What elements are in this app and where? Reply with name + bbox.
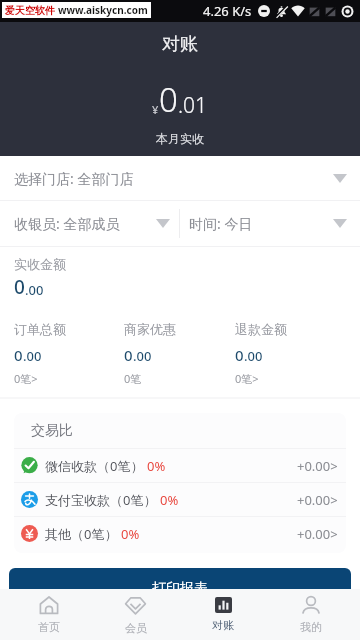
staticText: 退款金额 [235,321,287,337]
button[interactable]: 选择门店: 全部门店 [0,156,360,200]
button[interactable]: 微信收款（0笔） [14,449,346,482]
staticText: 0笔> [235,371,259,386]
staticText: 我的 [300,620,322,634]
button[interactable]: 其他（0笔） [14,517,346,550]
staticText: 交易比 [31,422,73,440]
staticText: 会员 [125,621,147,635]
staticText: 0笔> [14,371,38,386]
button[interactable]: 支付宝收款（0笔） [14,483,346,516]
staticText: 选择门店: 全部门店 [14,169,134,188]
staticText: +0.00> [297,457,338,475]
staticText: 首页 [38,620,60,634]
staticText: .01 [178,91,208,120]
staticText: 对账 [162,33,198,56]
staticText: 实收金额 [14,256,66,272]
staticText: 0 [159,77,178,122]
staticText: 其他（0笔） [45,525,118,543]
staticText: www.aiskycn.com [58,3,148,17]
staticText: 0 [124,345,133,365]
staticText: 0笔 [124,371,142,386]
button[interactable]: 退款金额 [235,321,346,386]
staticText: 0% [121,525,140,543]
button[interactable]: 会员 [92,589,179,640]
staticText: +0.00> [297,491,338,509]
staticText: .00 [23,347,42,365]
staticText: 支付宝收款（0笔） [45,491,157,509]
staticText: .00 [244,347,263,365]
staticText: 0% [160,491,179,509]
staticText: 时间: 今日 [189,214,253,233]
button[interactable]: 我的 [267,589,355,640]
staticText: 0 [14,345,23,365]
staticText: 订单总额 [14,321,66,337]
button[interactable]: 时间: 今日 [180,201,360,246]
staticText: 微信收款（0笔） [45,457,144,475]
button[interactable]: 首页 [5,589,92,640]
staticText: 商家优惠 [124,321,176,337]
staticText: .00 [133,347,152,365]
staticText: +0.00> [297,525,338,543]
button[interactable]: 订单总额 [14,321,124,386]
button[interactable]: 收银员: 全部成员 [0,201,179,246]
staticText: 打印报表 [152,580,208,598]
staticText: .00 [25,281,44,299]
button[interactable]: 对账 [179,589,267,640]
button[interactable]: 商家优惠 [124,321,235,386]
staticText: 4.26 K/s [203,2,252,20]
staticText: 对账 [212,618,234,632]
staticText: 0 [14,274,25,300]
staticText: ¥ [152,102,159,117]
staticText: 爱天空软件 [5,4,55,17]
staticText: 0 [235,345,244,365]
staticText: 0% [147,457,166,475]
button[interactable]: 打印报表 [9,568,351,610]
staticText: 本月实收 [156,131,204,146]
staticText: 收银员: 全部成员 [14,214,120,233]
